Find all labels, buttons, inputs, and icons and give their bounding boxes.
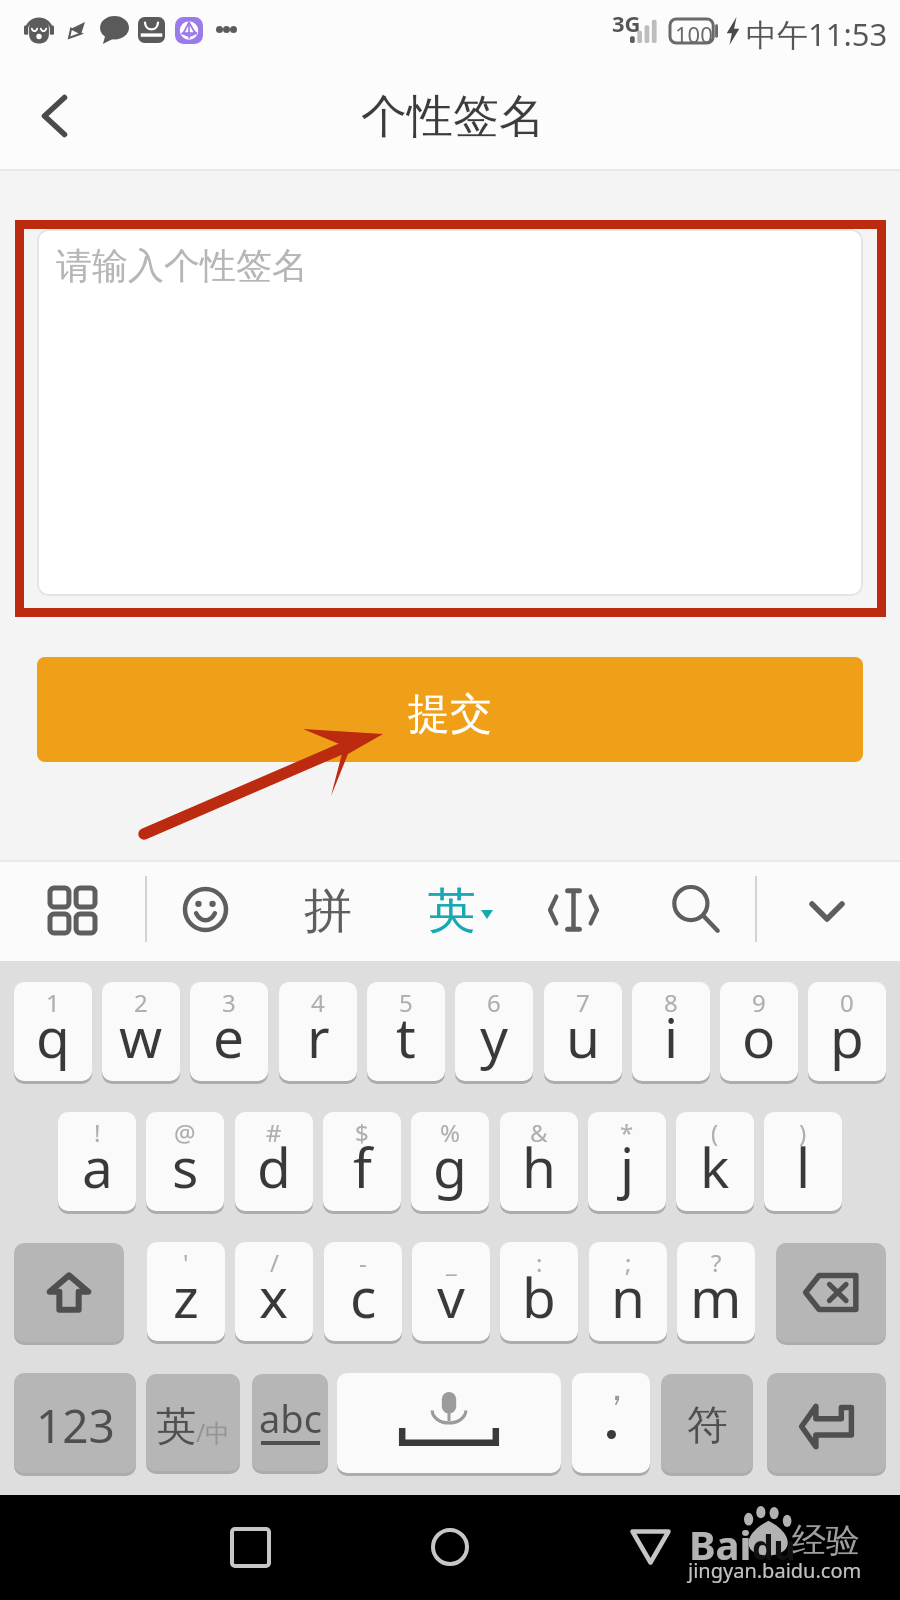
button[interactable]: _ bbox=[412, 1242, 490, 1341]
button[interactable]: - bbox=[324, 1242, 402, 1341]
staticText: ( bbox=[711, 1116, 719, 1149]
button[interactable]: Keyboard layouts bbox=[32, 870, 112, 950]
staticText: /中 bbox=[196, 1415, 231, 1449]
staticText: 3G bbox=[612, 8, 641, 38]
staticText: i bbox=[664, 999, 679, 1074]
staticText: u bbox=[566, 999, 600, 1074]
button[interactable]: Numbers bbox=[14, 1373, 136, 1473]
staticText: & bbox=[530, 1116, 548, 1149]
button[interactable]: Emoji bbox=[165, 869, 246, 950]
staticText: r bbox=[307, 999, 330, 1074]
button[interactable]: Move cursor bbox=[533, 870, 613, 950]
staticText: z bbox=[173, 1259, 199, 1334]
button[interactable]: 1 bbox=[14, 982, 92, 1081]
staticText: 英 bbox=[428, 881, 476, 941]
button[interactable]: 5 bbox=[367, 982, 445, 1081]
staticText: h bbox=[522, 1129, 556, 1204]
staticText: 8 bbox=[664, 986, 678, 1019]
button[interactable]: ? bbox=[677, 1242, 755, 1341]
button[interactable]: ) bbox=[764, 1112, 842, 1211]
staticText: x bbox=[259, 1259, 289, 1334]
button[interactable]: $ bbox=[323, 1112, 401, 1211]
button[interactable]: 3 bbox=[190, 982, 268, 1081]
button[interactable]: ! bbox=[58, 1112, 136, 1211]
staticText: Bai bbox=[689, 1517, 752, 1571]
staticText: 123 bbox=[36, 1394, 115, 1457]
staticText: ? bbox=[711, 1246, 722, 1279]
button[interactable]: 6 bbox=[455, 982, 533, 1081]
staticText: y bbox=[480, 999, 509, 1074]
button[interactable]: 英 bbox=[410, 871, 494, 951]
staticText: 中午11:53 bbox=[746, 13, 888, 55]
staticText: w bbox=[119, 999, 163, 1074]
button[interactable]: 0 bbox=[808, 982, 886, 1081]
button[interactable]: : bbox=[500, 1242, 578, 1341]
staticText: ; bbox=[625, 1246, 632, 1279]
staticText: 符 bbox=[687, 1400, 728, 1452]
button[interactable]: 8 bbox=[632, 982, 710, 1081]
staticText: b bbox=[522, 1259, 556, 1334]
button[interactable]: Home bbox=[420, 1517, 480, 1577]
button[interactable]: @ bbox=[146, 1112, 224, 1211]
staticText: d bbox=[257, 1129, 291, 1204]
staticText: 3 bbox=[222, 986, 236, 1019]
staticText: m bbox=[690, 1259, 742, 1334]
button[interactable]: Search bbox=[656, 870, 736, 950]
staticText: ! bbox=[94, 1116, 101, 1149]
staticText: 英 bbox=[156, 1401, 196, 1451]
button[interactable]: Hide keyboard bbox=[787, 871, 867, 951]
button[interactable]: 2 bbox=[102, 982, 180, 1081]
staticText: c bbox=[350, 1259, 377, 1334]
button[interactable]: ' bbox=[147, 1242, 225, 1341]
staticText: du bbox=[752, 1524, 796, 1570]
staticText: 100 bbox=[675, 19, 713, 49]
button[interactable]: Back bbox=[2, 65, 106, 167]
button[interactable]: # bbox=[235, 1112, 313, 1211]
button[interactable]: 4 bbox=[279, 982, 357, 1081]
button[interactable]: Punctuation bbox=[572, 1373, 650, 1473]
staticText: 0 bbox=[840, 986, 854, 1019]
staticText: 9 bbox=[752, 986, 766, 1019]
button[interactable]: & bbox=[500, 1112, 578, 1211]
button[interactable]: ; bbox=[589, 1242, 667, 1341]
staticText: t bbox=[396, 999, 416, 1074]
button[interactable]: Shift bbox=[14, 1243, 124, 1342]
staticText: g bbox=[433, 1129, 467, 1204]
button[interactable]: Back bbox=[620, 1517, 680, 1577]
staticText: 个性签名 bbox=[361, 88, 545, 146]
button[interactable]: / bbox=[235, 1242, 313, 1341]
staticText: # bbox=[266, 1116, 282, 1149]
staticText: % bbox=[440, 1116, 460, 1149]
button[interactable]: Enter bbox=[767, 1373, 886, 1473]
staticText: o bbox=[742, 999, 776, 1074]
button[interactable]: Space bbox=[337, 1373, 561, 1473]
staticText: / bbox=[270, 1246, 279, 1279]
staticText: e bbox=[213, 999, 245, 1074]
staticText: s bbox=[172, 1129, 199, 1204]
staticText: ， bbox=[599, 1373, 635, 1410]
staticText: 6 bbox=[487, 986, 501, 1019]
button[interactable]: 请输入个性签名 bbox=[37, 229, 863, 596]
staticText: 7 bbox=[576, 986, 590, 1019]
button[interactable]: % bbox=[411, 1112, 489, 1211]
staticText: _ bbox=[446, 1246, 457, 1279]
button[interactable]: Symbols bbox=[661, 1374, 753, 1473]
staticText: 5 bbox=[399, 986, 413, 1019]
button[interactable]: Language bbox=[146, 1374, 240, 1471]
button[interactable]: 7 bbox=[544, 982, 622, 1081]
staticText: ) bbox=[799, 1116, 807, 1149]
button[interactable]: 提交 bbox=[37, 657, 863, 762]
button[interactable]: ( bbox=[676, 1112, 754, 1211]
staticText: k bbox=[700, 1129, 730, 1204]
staticText: abc bbox=[259, 1392, 322, 1444]
button[interactable]: abc bbox=[252, 1374, 328, 1471]
staticText: * bbox=[620, 1116, 634, 1149]
button[interactable]: Recents bbox=[220, 1517, 280, 1577]
button[interactable]: * bbox=[588, 1112, 666, 1211]
button[interactable]: Backspace bbox=[776, 1243, 886, 1342]
button[interactable]: 拼 bbox=[288, 871, 368, 951]
staticText: n bbox=[611, 1259, 645, 1334]
staticText: 请输入个性签名 bbox=[56, 243, 308, 288]
button[interactable]: 9 bbox=[720, 982, 798, 1081]
staticText: l bbox=[796, 1129, 811, 1204]
